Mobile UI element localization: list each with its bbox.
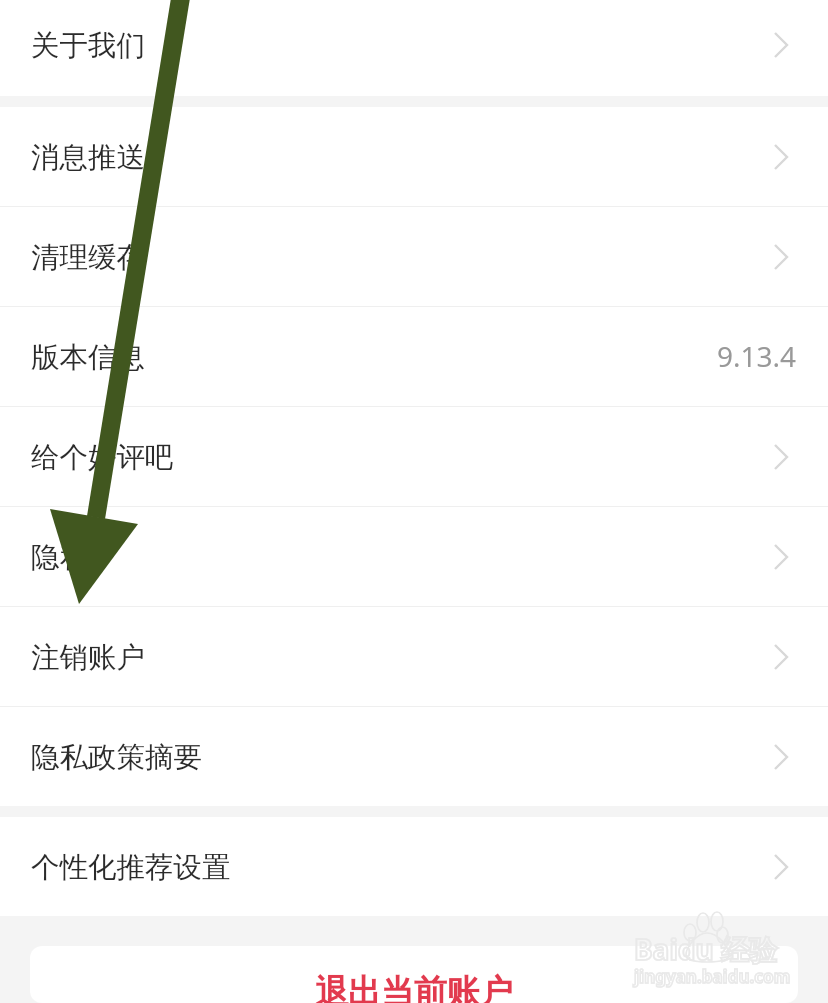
button[interactable]: 给个好评吧: [0, 407, 828, 506]
staticText: 隐私政策摘要: [31, 740, 202, 776]
other: Open: [773, 137, 797, 177]
staticText: 9.13.4: [717, 337, 797, 375]
button[interactable]: 消息推送: [0, 107, 828, 206]
button[interactable]: 注销账户: [0, 607, 828, 706]
other: Open: [773, 25, 797, 65]
staticText: Baidu 经验: [634, 930, 777, 968]
button[interactable]: 版本信息: [0, 307, 828, 406]
staticText: 给个好评吧: [31, 440, 174, 476]
button[interactable]: 清理缓存: [0, 207, 828, 306]
button[interactable]: 隐私: [0, 507, 828, 606]
staticText: 清理缓存: [31, 240, 145, 276]
button[interactable]: 退出当前账户: [30, 946, 798, 1003]
other: Open: [773, 847, 797, 887]
button[interactable]: 个性化推荐设置: [0, 817, 828, 916]
other: Open: [773, 637, 797, 677]
staticText: 注销账户: [31, 640, 145, 676]
other: Open: [773, 737, 797, 777]
staticText: 消息推送: [31, 140, 145, 176]
other: Open: [773, 537, 797, 577]
other: Open: [773, 237, 797, 277]
staticText: 隐私: [31, 540, 88, 576]
staticText: 版本信息: [31, 340, 145, 376]
button[interactable]: 隐私政策摘要: [0, 707, 828, 806]
staticText: 退出当前账户: [30, 971, 798, 1003]
other: Open: [773, 437, 797, 477]
button[interactable]: 关于我们: [0, 0, 828, 93]
staticText: jingyan.baidu.com: [634, 965, 791, 988]
staticText: 关于我们: [31, 28, 145, 64]
staticText: 个性化推荐设置: [31, 850, 231, 886]
